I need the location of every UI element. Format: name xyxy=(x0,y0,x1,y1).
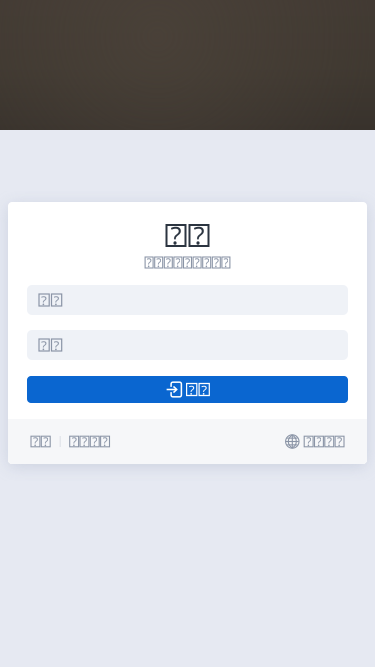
staticText: ? xyxy=(166,254,171,270)
staticText: ? xyxy=(306,433,311,449)
staticText: ? xyxy=(175,254,180,270)
button[interactable]: ? xyxy=(31,436,50,447)
staticText: ? xyxy=(41,336,47,354)
staticText: ? xyxy=(54,336,60,354)
staticText: ? xyxy=(72,433,77,449)
staticText: ? xyxy=(156,254,161,270)
staticText: ? xyxy=(185,254,190,270)
staticText: ? xyxy=(92,433,97,449)
staticText: ? xyxy=(170,218,181,252)
staticText: ? xyxy=(214,254,219,270)
staticText: ? xyxy=(337,433,342,449)
staticText: ? xyxy=(316,433,321,449)
staticText: ? xyxy=(195,254,200,270)
button[interactable]: ? xyxy=(70,436,109,447)
staticText: ? xyxy=(41,291,47,309)
button[interactable]: ? xyxy=(286,435,344,448)
staticText: ? xyxy=(223,254,228,270)
button[interactable]: ? xyxy=(27,376,348,403)
staticText: ? xyxy=(54,291,60,309)
staticText: ? xyxy=(189,381,195,398)
staticText: ? xyxy=(204,254,209,270)
staticText: ? xyxy=(201,381,207,398)
staticText: ? xyxy=(327,433,332,449)
staticText: ? xyxy=(103,433,108,449)
staticText: ? xyxy=(193,218,204,252)
staticText: ? xyxy=(147,254,152,270)
staticText: ? xyxy=(82,433,87,449)
staticText: ? xyxy=(33,433,38,449)
staticText: ? xyxy=(43,433,48,449)
